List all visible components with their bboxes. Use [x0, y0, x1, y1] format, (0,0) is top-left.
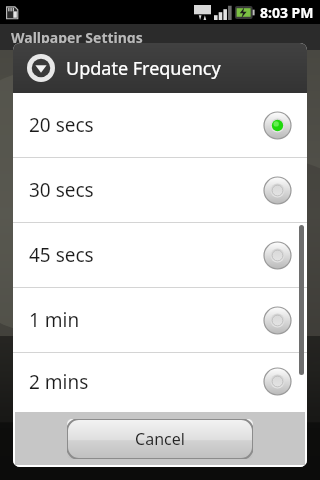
button[interactable]: Cancel	[67, 419, 253, 459]
staticText: Wallpaper Settings	[11, 28, 143, 47]
staticText: 8:03 PM	[260, 3, 314, 22]
button[interactable]: 45 secs	[13, 223, 307, 287]
staticText: 30 secs	[29, 177, 264, 203]
button[interactable]: 2 mins	[13, 353, 307, 410]
staticText: Cancel	[135, 428, 185, 450]
staticText: Update Frequency	[66, 56, 221, 81]
button[interactable]: 1 min	[13, 288, 307, 352]
staticText: 20 secs	[29, 112, 264, 138]
staticText: 1 min	[29, 307, 264, 333]
staticText: 45 secs	[29, 242, 264, 268]
button[interactable]: 20 secs	[13, 93, 307, 157]
staticText: 2 mins	[29, 369, 264, 395]
button[interactable]: 30 secs	[13, 158, 307, 222]
